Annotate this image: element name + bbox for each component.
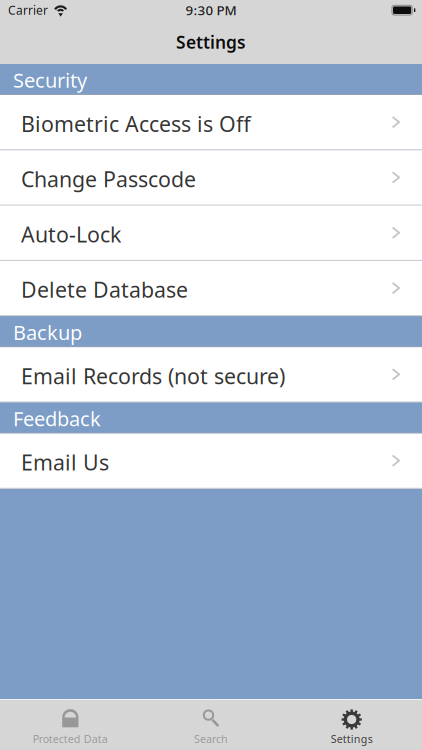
staticText: Email Us xyxy=(21,448,109,476)
button[interactable]: Protected Data xyxy=(0,699,141,750)
staticText: Search xyxy=(194,732,228,746)
staticText: Settings xyxy=(176,30,246,53)
staticText: Feedback xyxy=(13,405,101,432)
button[interactable]: Auto-Lock xyxy=(0,206,422,261)
staticText: Protected Data xyxy=(33,732,108,746)
button[interactable]: Change Passcode xyxy=(0,150,422,206)
button[interactable]: Search xyxy=(141,699,281,750)
staticText: Carrier xyxy=(8,2,48,18)
staticText: Biometric Access is Off xyxy=(21,109,251,138)
button[interactable]: Delete Database xyxy=(0,261,422,316)
staticText: Security xyxy=(13,67,87,93)
staticText: Settings xyxy=(331,732,373,746)
staticText: Email Records (not secure) xyxy=(21,362,285,390)
button[interactable]: Biometric Access is Off xyxy=(0,95,422,150)
staticText: Change Passcode xyxy=(21,165,196,193)
staticText: Backup xyxy=(13,319,82,345)
staticText: Delete Database xyxy=(21,275,188,304)
button[interactable]: Email Us xyxy=(0,433,422,489)
button[interactable]: Settings xyxy=(281,699,422,750)
staticText: Auto-Lock xyxy=(21,220,121,248)
staticText: 9:30 PM xyxy=(185,1,236,19)
button[interactable]: Email Records (not secure) xyxy=(0,347,422,402)
